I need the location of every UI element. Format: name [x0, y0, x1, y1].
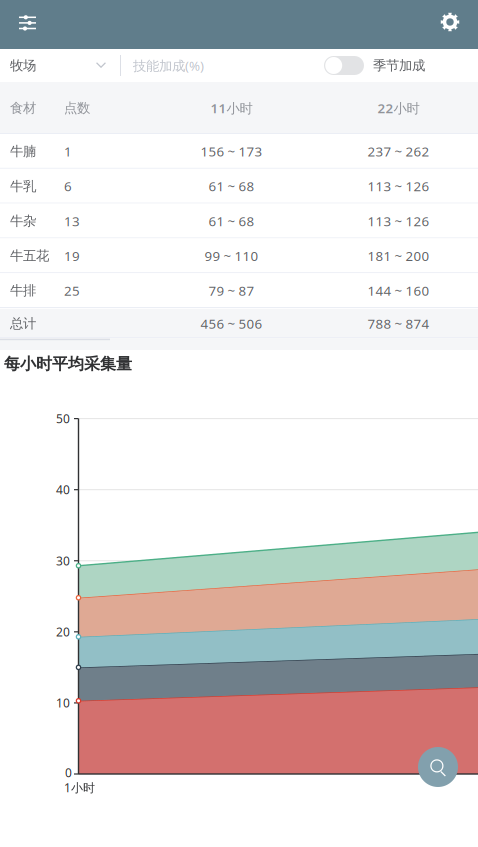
staticText: 6 — [64, 177, 72, 195]
staticText: 99 ~ 110 — [204, 247, 258, 265]
staticText: 牛腩 — [10, 143, 36, 160]
staticText: 13 — [64, 212, 80, 230]
staticText: 456 ~ 506 — [200, 315, 262, 332]
button[interactable]: Search — [418, 747, 458, 787]
staticText: 每小时平均采集量 — [4, 354, 132, 374]
staticText: 牛乳 — [10, 178, 36, 194]
staticText: 113 ~ 126 — [367, 212, 429, 230]
staticText: 22小时 — [377, 99, 419, 117]
button[interactable]: Filters — [5, 1, 49, 45]
staticText: 79 ~ 87 — [208, 282, 254, 299]
staticText: 19 — [64, 247, 80, 265]
staticText: 20 — [56, 624, 70, 640]
staticText: 144 ~ 160 — [367, 282, 429, 299]
staticText: 牛排 — [10, 282, 36, 299]
staticText: 1 — [64, 142, 72, 160]
staticText: 1小时 — [64, 779, 95, 795]
staticText: 50 — [56, 411, 70, 426]
staticText: 25 — [64, 282, 80, 299]
staticText: 点数 — [64, 100, 90, 116]
staticText: 食材 — [10, 100, 36, 116]
button[interactable]: Settings — [428, 0, 472, 44]
staticText: 40 — [56, 482, 70, 498]
staticText: 总计 — [10, 315, 36, 332]
staticText: 61 ~ 68 — [208, 212, 254, 230]
staticText: 788 ~ 874 — [367, 315, 429, 332]
staticText: 113 ~ 126 — [367, 177, 429, 195]
staticText: 牧场 — [10, 57, 36, 74]
button[interactable]: 季节加成 — [324, 49, 474, 82]
staticText: 61 ~ 68 — [208, 177, 254, 195]
staticText: 181 ~ 200 — [367, 247, 429, 265]
staticText: 11小时 — [210, 99, 252, 117]
button[interactable]: 牧场 — [0, 49, 120, 82]
staticText: 237 ~ 262 — [367, 142, 429, 160]
staticText: 季节加成 — [373, 57, 425, 74]
staticText: 10 — [56, 695, 70, 711]
staticText: 技能加成(%) — [133, 57, 204, 74]
staticText: 牛五花 — [10, 248, 49, 264]
staticText: 30 — [56, 553, 70, 569]
staticText: 156 ~ 173 — [200, 142, 262, 160]
staticText: 0 — [65, 764, 72, 780]
staticText: 牛杂 — [10, 213, 36, 229]
